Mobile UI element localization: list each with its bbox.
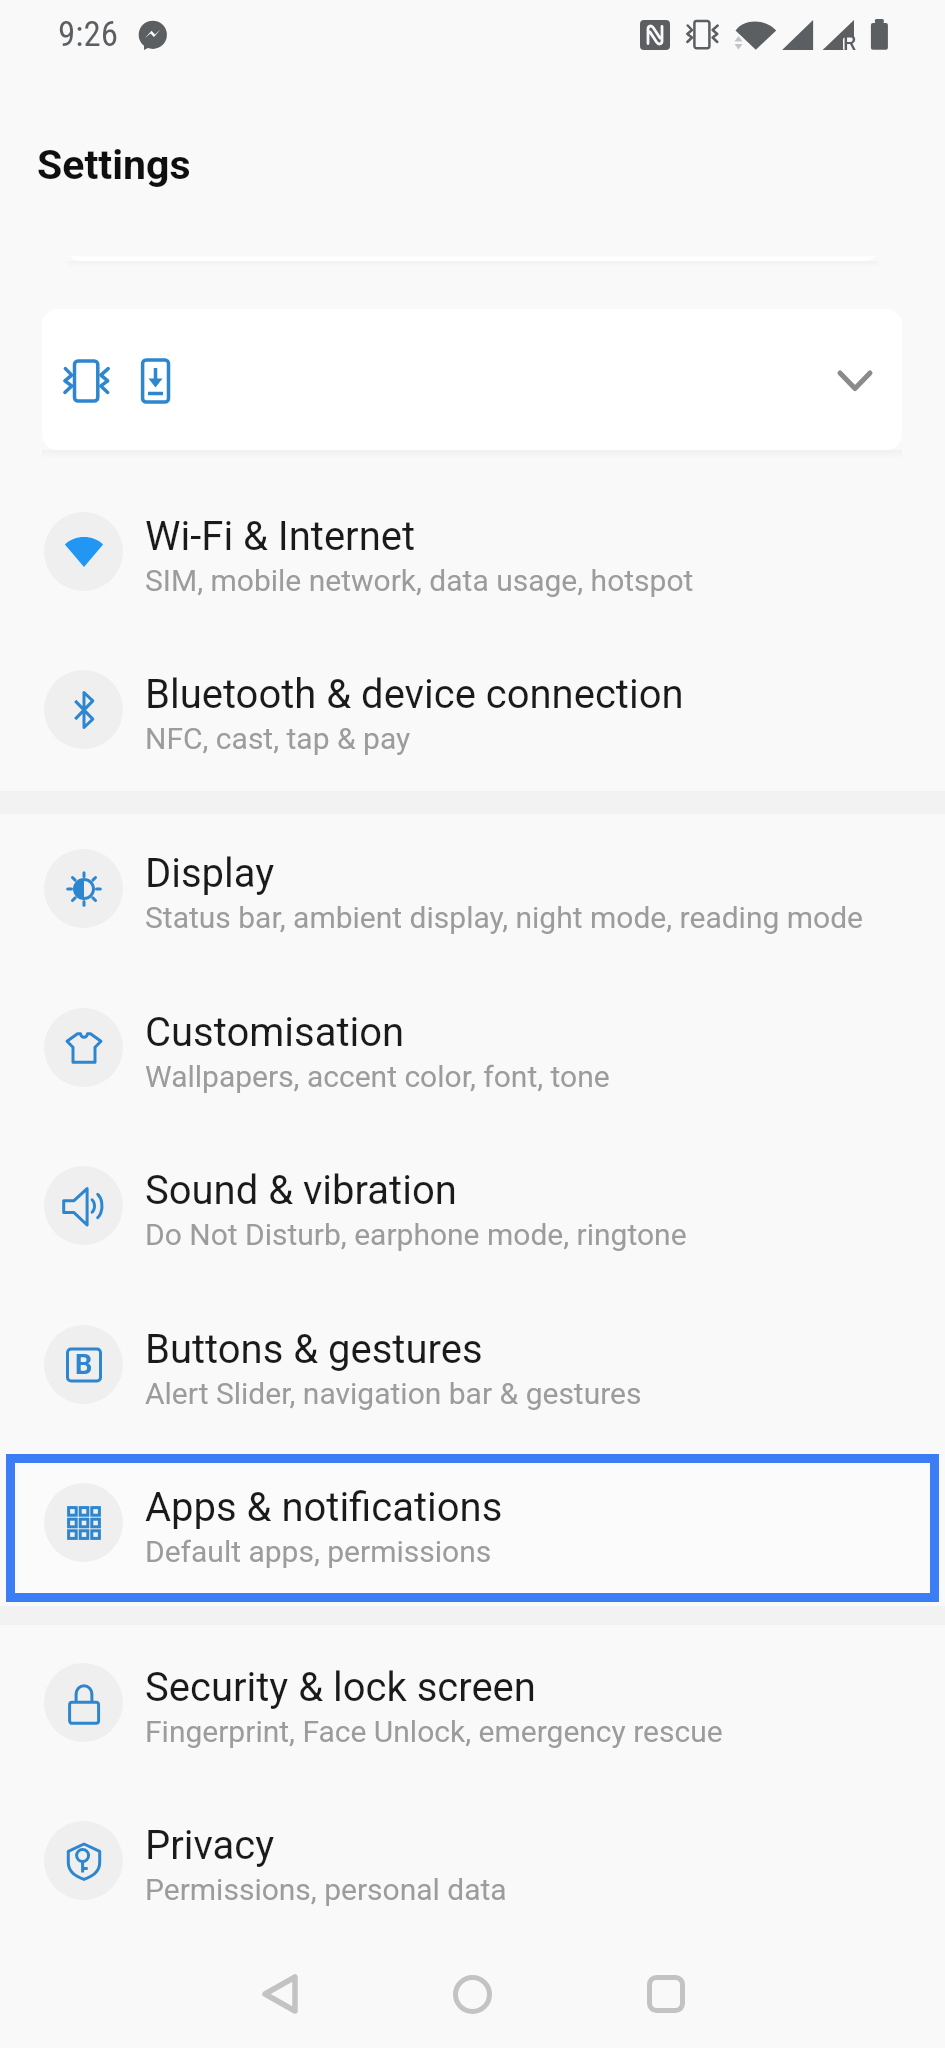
staticText: Privacy xyxy=(145,1822,275,1869)
staticText: Settings xyxy=(37,141,191,189)
button[interactable]: Display xyxy=(0,810,945,968)
staticText: SIM, mobile network, data usage, hotspot xyxy=(145,563,694,598)
other: Expand xyxy=(837,371,873,394)
staticText: NFC, cast, tap & pay xyxy=(145,721,411,756)
button[interactable]: Sound & vibration xyxy=(0,1127,945,1285)
staticText: Wi-Fi & Internet xyxy=(145,513,416,560)
button[interactable]: Recents xyxy=(611,1939,721,2048)
staticText: Buttons & gestures xyxy=(145,1326,483,1373)
button[interactable]: B xyxy=(0,1286,945,1444)
button[interactable]: Apps & notifications xyxy=(0,1444,945,1602)
button[interactable]: Bluetooth & device connection xyxy=(0,631,945,789)
staticText: Default apps, permissions xyxy=(145,1534,492,1569)
staticText: R xyxy=(843,31,857,56)
staticText: Customisation xyxy=(145,1009,405,1056)
staticText: Alert Slider, navigation bar & gestures xyxy=(145,1376,642,1411)
staticText: Fingerprint, Face Unlock, emergency resc… xyxy=(145,1714,723,1749)
staticText: Security & lock screen xyxy=(145,1664,536,1711)
button[interactable]: Back xyxy=(225,1939,335,2048)
staticText: B xyxy=(75,1349,93,1381)
button[interactable]: Customisation xyxy=(0,969,945,1127)
button[interactable]: Security & lock screen xyxy=(0,1624,945,1782)
button[interactable]: Wi-Fi & Internet xyxy=(0,473,945,631)
staticText: Status bar, ambient display, night mode,… xyxy=(145,900,864,935)
staticText: Display xyxy=(145,850,275,897)
staticText: Sound & vibration xyxy=(145,1167,457,1214)
staticText: Bluetooth & device connection xyxy=(145,671,684,718)
staticText: 9:26 xyxy=(58,14,119,55)
staticText: Permissions, personal data xyxy=(145,1872,507,1907)
button[interactable]: Privacy xyxy=(0,1782,945,1940)
button[interactable]: Home xyxy=(417,1939,527,2048)
staticText: Apps & notifications xyxy=(145,1484,503,1531)
button[interactable]: Expand xyxy=(42,309,902,450)
staticText: Wallpapers, accent color, font, tone xyxy=(145,1059,610,1094)
staticText: Do Not Disturb, earphone mode, ringtone xyxy=(145,1217,687,1252)
